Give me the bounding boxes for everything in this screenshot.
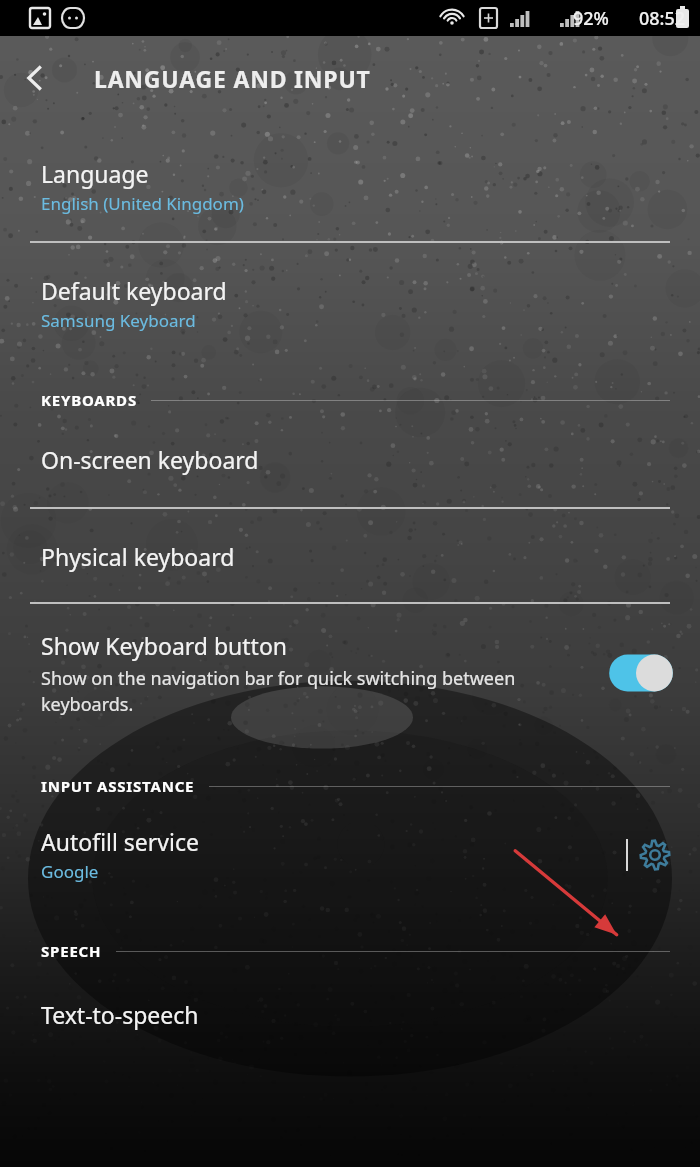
staticText: Autofill service — [41, 826, 199, 857]
button[interactable]: Physical keyboard — [0, 509, 700, 602]
button[interactable]: Autofill service — [0, 796, 700, 905]
staticText: Physical keyboard — [41, 541, 235, 572]
staticText: Google — [41, 860, 99, 883]
button[interactable]: On-screen keyboard — [0, 410, 700, 507]
button[interactable]: Text-to-speech — [0, 961, 700, 1050]
staticText: Text-to-speech — [41, 999, 199, 1030]
button[interactable]: Autofill service settings — [628, 828, 682, 882]
button[interactable]: Language — [0, 120, 700, 241]
staticText: Samsung Keyboard — [41, 309, 196, 332]
staticText: LANGUAGE AND INPUT — [94, 63, 371, 94]
staticText: 08:52 — [639, 6, 686, 31]
staticText: Show on the navigation bar for quick swi… — [41, 666, 588, 716]
staticText: English (United Kingdom) — [41, 192, 244, 215]
staticText: SPEECH — [41, 941, 102, 961]
button[interactable]: Show Keyboard button toggle, on — [604, 650, 678, 696]
staticText: Default keyboard — [41, 275, 227, 306]
button[interactable]: Back — [0, 43, 70, 113]
button[interactable]: Show Keyboard button — [0, 604, 700, 734]
button[interactable]: Default keyboard — [0, 243, 700, 350]
staticText: KEYBOARDS — [41, 390, 137, 410]
staticText: INPUT ASSISTANCE — [41, 776, 195, 796]
staticText: On-screen keyboard — [41, 444, 259, 475]
staticText: Show Keyboard button — [41, 630, 288, 661]
staticText: Language — [41, 158, 149, 189]
staticText: 92% — [573, 6, 609, 31]
